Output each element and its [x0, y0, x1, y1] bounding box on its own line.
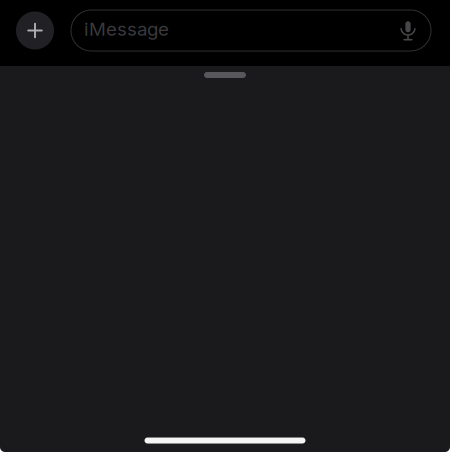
staticText: iMessage [84, 18, 169, 40]
button[interactable]: Add attachment [16, 11, 54, 49]
button[interactable]: Resize app drawer [204, 66, 246, 78]
button[interactable]: Dictate [397, 15, 421, 45]
